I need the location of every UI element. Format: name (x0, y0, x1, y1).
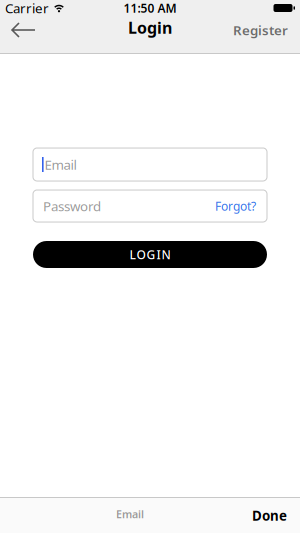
staticText: Done (252, 507, 287, 524)
staticText: Register (233, 21, 288, 39)
button[interactable]: Done (252, 507, 287, 524)
staticText: Password (43, 197, 101, 215)
staticText: Login (128, 17, 172, 38)
staticText: Email (45, 156, 77, 173)
button[interactable]: Email (33, 148, 267, 181)
button[interactable]: Password (33, 190, 267, 222)
staticText: Email (116, 507, 144, 521)
staticText: Forgot? (215, 198, 256, 214)
button[interactable]: LOGIN (33, 241, 267, 268)
staticText: LOGIN (129, 246, 170, 262)
staticText: 11:50 AM (123, 0, 176, 16)
staticText: Carrier (5, 0, 49, 17)
button[interactable]: Forgot? (215, 198, 256, 214)
button[interactable] (0, 22, 36, 38)
button[interactable]: Register (233, 21, 300, 39)
